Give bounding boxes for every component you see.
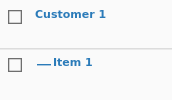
- staticText: Item 1: [53, 56, 93, 69]
- button[interactable]: Select Item 1: [8, 58, 22, 72]
- staticText: Customer 1: [35, 8, 107, 21]
- button[interactable]: Select Customer 1: [8, 10, 22, 24]
- button[interactable]: Select Customer 1: [0, 0, 172, 48]
- button[interactable]: Select Item 1: [0, 50, 172, 96]
